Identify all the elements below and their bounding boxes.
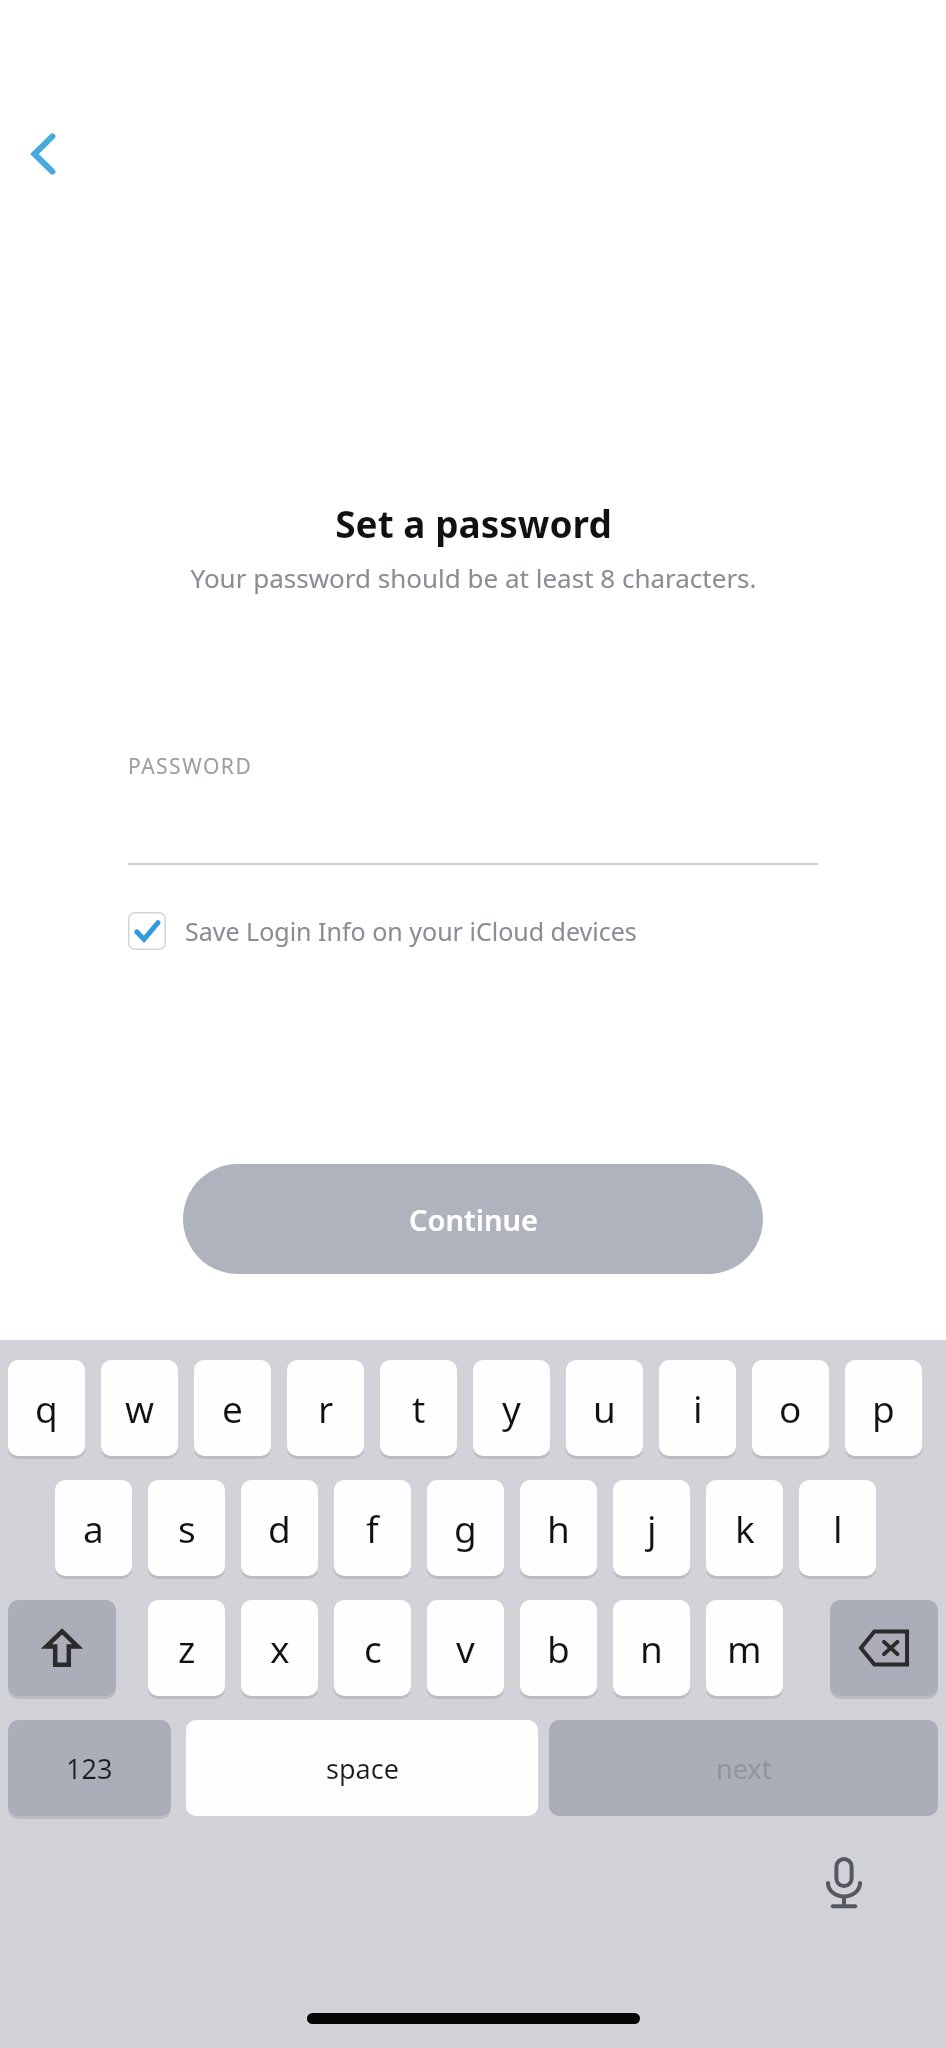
staticText: m bbox=[727, 1623, 762, 1673]
staticText: t bbox=[412, 1383, 426, 1433]
staticText: w bbox=[125, 1383, 155, 1433]
staticText: v bbox=[456, 1623, 475, 1673]
button[interactable]: c bbox=[334, 1600, 411, 1696]
staticText: z bbox=[178, 1623, 196, 1673]
staticText: space bbox=[326, 1750, 399, 1787]
button[interactable]: q bbox=[8, 1360, 85, 1456]
staticText: next bbox=[716, 1750, 772, 1787]
button[interactable]: t bbox=[380, 1360, 457, 1456]
button[interactable]: Numbers bbox=[8, 1720, 171, 1816]
button[interactable]: i bbox=[659, 1360, 736, 1456]
staticText: 123 bbox=[66, 1750, 113, 1787]
staticText: Set a password bbox=[335, 498, 612, 548]
button[interactable]: d bbox=[241, 1480, 318, 1576]
button[interactable]: a bbox=[55, 1480, 132, 1576]
staticText: l bbox=[833, 1503, 843, 1553]
button[interactable]: v bbox=[427, 1600, 504, 1696]
button[interactable]: n bbox=[613, 1600, 690, 1696]
button[interactable]: e bbox=[194, 1360, 271, 1456]
button[interactable]: Backspace bbox=[830, 1600, 938, 1696]
staticText: i bbox=[693, 1383, 703, 1433]
staticText: j bbox=[647, 1503, 657, 1553]
button[interactable]: f bbox=[334, 1480, 411, 1576]
button[interactable]: Save Login Info on your iCloud devices bbox=[128, 912, 645, 950]
button[interactable]: u bbox=[566, 1360, 643, 1456]
staticText: h bbox=[547, 1503, 570, 1553]
button[interactable]: s bbox=[148, 1480, 225, 1576]
button[interactable]: x bbox=[241, 1600, 318, 1696]
staticText: c bbox=[364, 1623, 382, 1673]
staticText: Save Login Info on your iCloud devices bbox=[185, 914, 637, 948]
staticText: s bbox=[178, 1503, 196, 1553]
staticText: n bbox=[640, 1623, 663, 1673]
staticText: f bbox=[366, 1503, 379, 1553]
button[interactable]: Dictate bbox=[800, 1840, 888, 1928]
button[interactable]: y bbox=[473, 1360, 550, 1456]
staticText: d bbox=[268, 1503, 291, 1553]
staticText: o bbox=[779, 1383, 802, 1433]
button[interactable]: w bbox=[101, 1360, 178, 1456]
button[interactable]: Continue bbox=[183, 1164, 763, 1274]
button[interactable]: l bbox=[799, 1480, 876, 1576]
staticText: Your password should be at least 8 chara… bbox=[190, 560, 757, 595]
staticText: g bbox=[454, 1503, 477, 1553]
staticText: PASSWORD bbox=[128, 752, 253, 781]
staticText: u bbox=[593, 1383, 616, 1433]
button[interactable]: m bbox=[706, 1600, 783, 1696]
button[interactable]: p bbox=[845, 1360, 922, 1456]
staticText: r bbox=[318, 1383, 334, 1433]
staticText: p bbox=[872, 1383, 895, 1433]
staticText: b bbox=[547, 1623, 570, 1673]
button[interactable]: o bbox=[752, 1360, 829, 1456]
button[interactable]: j bbox=[613, 1480, 690, 1576]
button[interactable]: h bbox=[520, 1480, 597, 1576]
staticText: x bbox=[270, 1623, 290, 1673]
button[interactable]: z bbox=[148, 1600, 225, 1696]
staticText: q bbox=[35, 1383, 58, 1433]
button[interactable]: g bbox=[427, 1480, 504, 1576]
staticText: Continue bbox=[409, 1200, 538, 1239]
staticText: a bbox=[83, 1503, 104, 1553]
button[interactable]: Back bbox=[16, 126, 72, 182]
staticText: y bbox=[502, 1383, 521, 1433]
staticText: e bbox=[222, 1383, 243, 1433]
button[interactable]: k bbox=[706, 1480, 783, 1576]
button[interactable]: r bbox=[287, 1360, 364, 1456]
button[interactable]: Shift bbox=[8, 1600, 116, 1696]
button[interactable]: b bbox=[520, 1600, 597, 1696]
staticText: k bbox=[735, 1503, 755, 1553]
button[interactable]: space bbox=[186, 1720, 538, 1816]
